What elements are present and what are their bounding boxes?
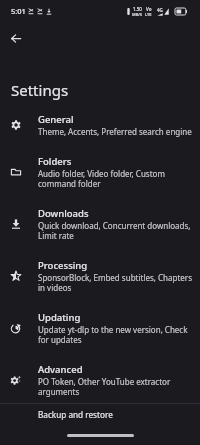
- staticText: Advanced: [38, 363, 83, 376]
- button[interactable]: Processing: [0, 250, 200, 302]
- button[interactable]: Backup and restore: [0, 404, 200, 445]
- staticText: MB/S: [132, 12, 143, 17]
- button[interactable]: Advanced: [0, 354, 200, 406]
- staticText: Backup and restore: [38, 409, 113, 420]
- staticText: LTE: [145, 12, 152, 17]
- staticText: Updating: [38, 311, 81, 324]
- staticText: General: [38, 113, 74, 126]
- button[interactable]: Folders: [0, 146, 200, 198]
- staticText: Quick download, Concurrent downloads, Li…: [38, 220, 192, 241]
- staticText: 4G: [157, 7, 163, 13]
- staticText: Audio folder, Video folder, Custom comma…: [38, 168, 192, 189]
- button[interactable]: General: [0, 104, 200, 146]
- staticText: PO Token, Other YouTube extractor argume…: [38, 376, 192, 397]
- staticText: Folders: [38, 155, 72, 168]
- staticText: Update yt-dlp to the new version, Check …: [38, 324, 192, 345]
- staticText: 5:01: [11, 6, 26, 16]
- button[interactable]: Back: [4, 26, 28, 50]
- staticText: Downloads: [38, 207, 89, 220]
- button[interactable]: Updating: [0, 302, 200, 354]
- staticText: Processing: [38, 259, 88, 272]
- staticText: SponsorBlock, Embed subtitles, Chapters …: [38, 272, 192, 293]
- staticText: Theme, Accents, Preferred search engine: [38, 126, 192, 137]
- staticText: Settings: [11, 80, 69, 100]
- staticText: Vo: [146, 6, 152, 12]
- staticText: 1.50: [133, 6, 142, 12]
- button[interactable]: Downloads: [0, 198, 200, 250]
